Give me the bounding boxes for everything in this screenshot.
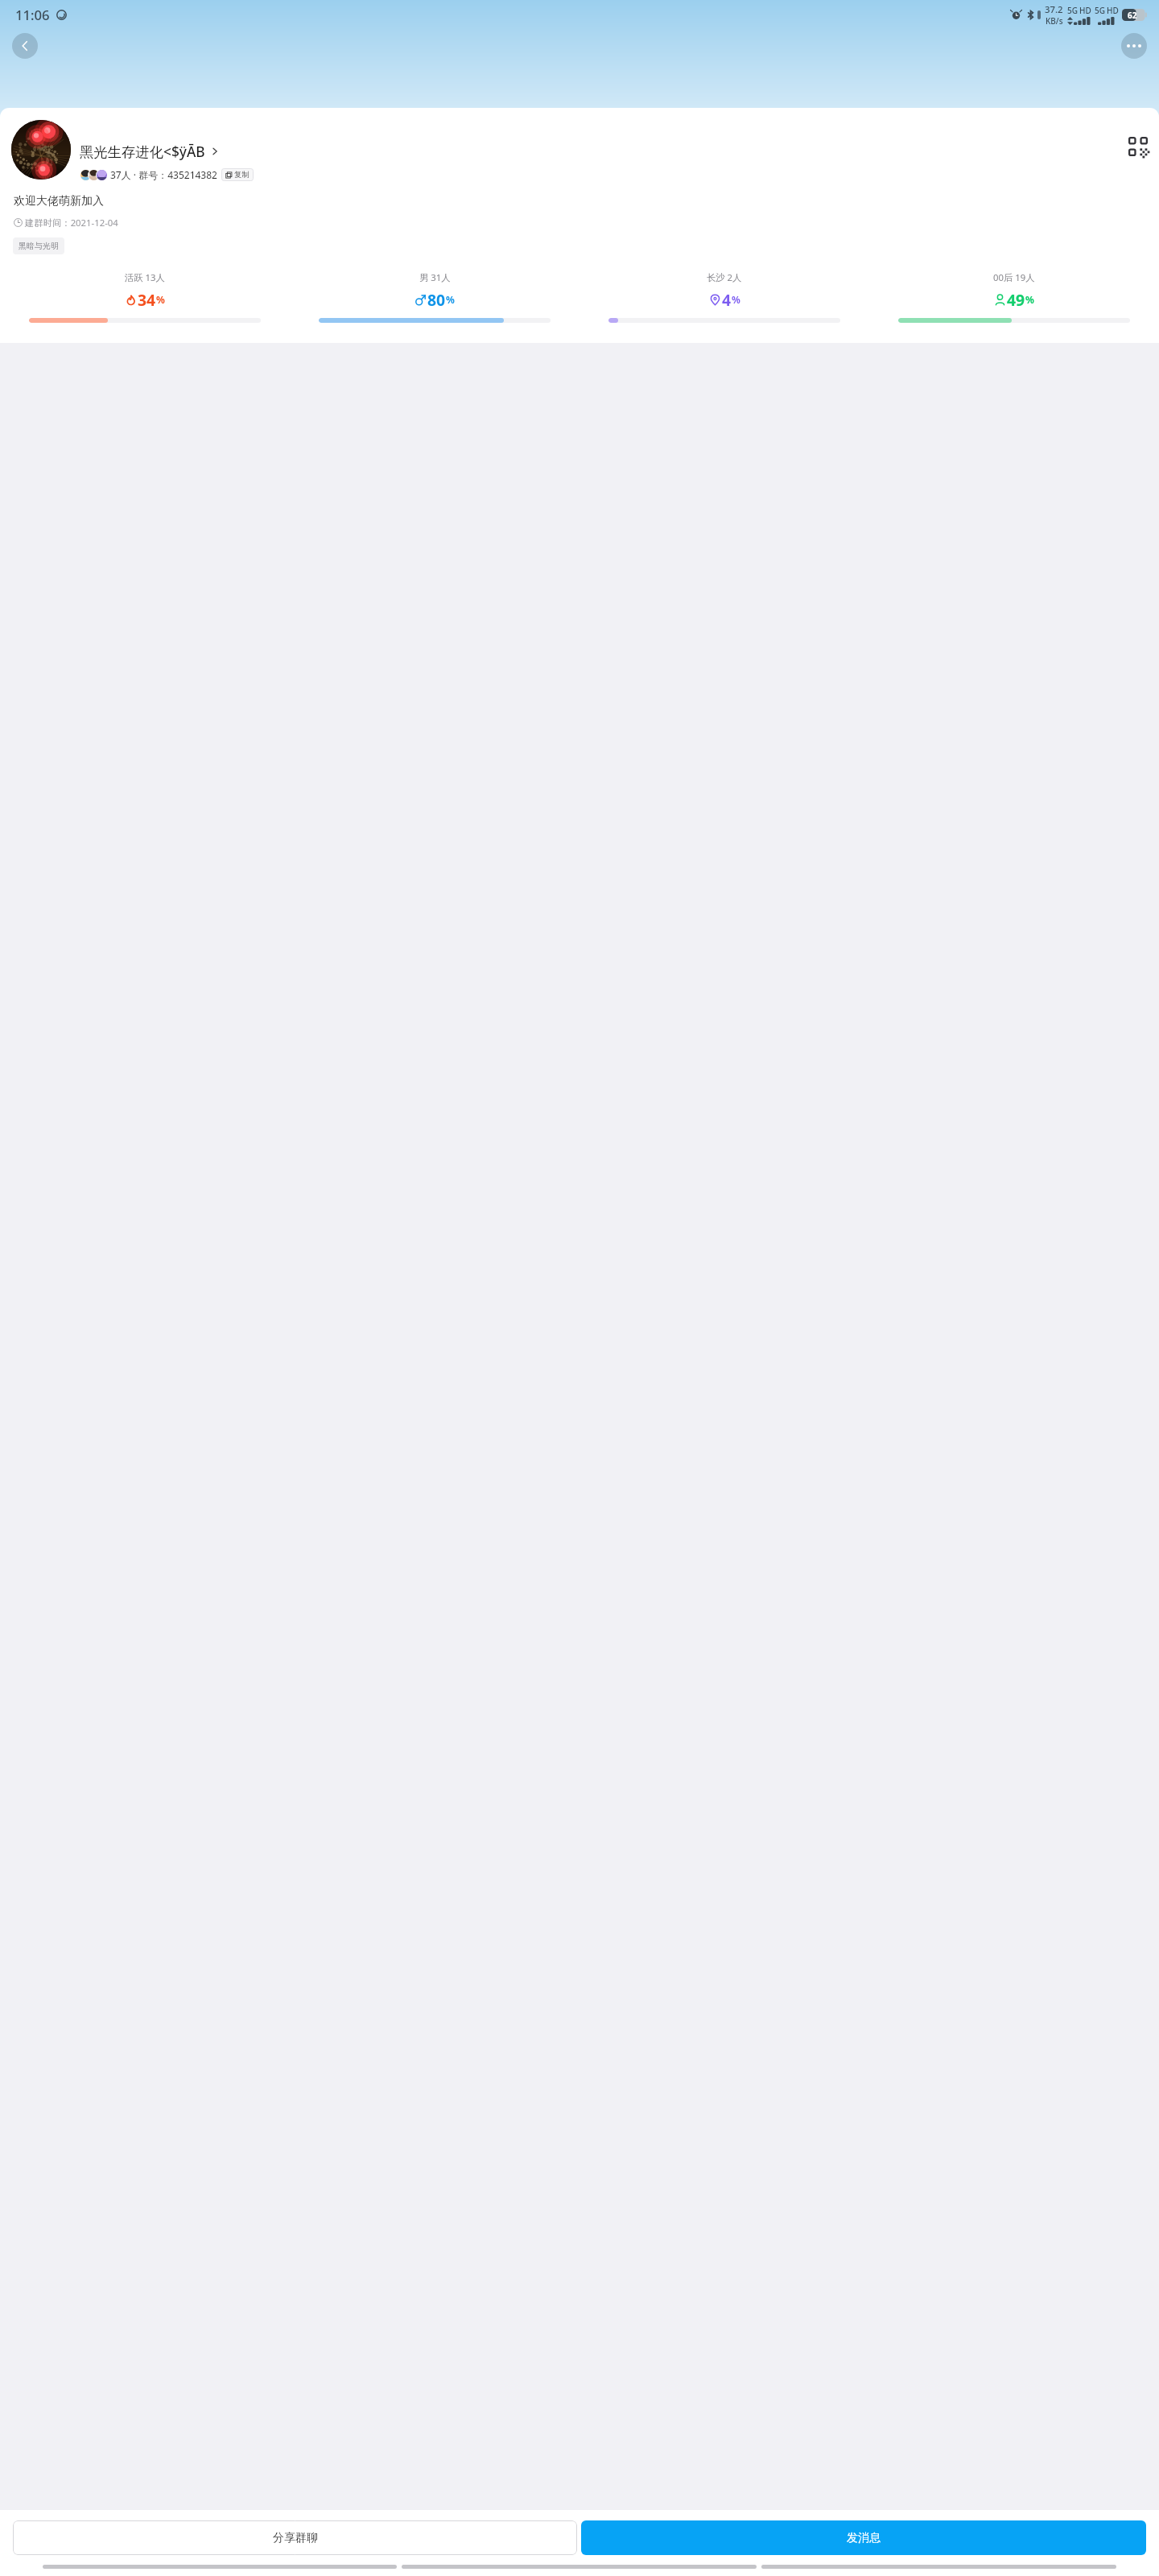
staticText: 11:06 bbox=[15, 6, 50, 24]
button[interactable]: 黑光生存进化<$ÿĀB bbox=[80, 142, 219, 161]
staticText: % bbox=[1025, 293, 1034, 306]
staticText: 黑光生存进化<$ÿĀB bbox=[80, 142, 205, 161]
button[interactable]: 长沙 2人 bbox=[579, 271, 869, 323]
button[interactable]: Back bbox=[12, 33, 38, 59]
staticText: 5G bbox=[1067, 5, 1078, 16]
button[interactable]: 活跃 13人 bbox=[0, 271, 290, 323]
button[interactable] bbox=[11, 120, 71, 180]
staticText: 活跃 13人 bbox=[125, 271, 165, 283]
staticText: KB/s bbox=[1046, 15, 1063, 27]
staticText: 37.2 bbox=[1045, 3, 1063, 15]
button[interactable]: 复制 bbox=[221, 168, 254, 181]
staticText: 分享群聊 bbox=[273, 2531, 318, 2545]
staticText: 长沙 2人 bbox=[707, 271, 742, 283]
button[interactable]: 黑暗与光明 bbox=[13, 237, 64, 254]
button[interactable]: More options bbox=[1121, 33, 1147, 59]
button[interactable]: 00后 19人 bbox=[869, 271, 1159, 323]
staticText: 34 bbox=[138, 289, 156, 310]
staticText: % bbox=[732, 293, 740, 306]
button[interactable]: Group QR code bbox=[1128, 137, 1148, 156]
staticText: 80 bbox=[427, 289, 446, 310]
button[interactable]: 分享群聊 bbox=[13, 2520, 577, 2555]
staticText: HD bbox=[1079, 5, 1091, 16]
staticText: % bbox=[446, 293, 455, 306]
staticText: 建群时间：2021-12-04 bbox=[25, 217, 118, 229]
staticText: 黑暗与光明 bbox=[19, 241, 59, 251]
button[interactable]: 发消息 bbox=[581, 2520, 1146, 2555]
staticText: 5G bbox=[1095, 5, 1105, 16]
staticText: 62 bbox=[1128, 10, 1137, 21]
staticText: 欢迎大佬萌新加入 bbox=[14, 194, 104, 208]
staticText: 00后 19人 bbox=[993, 271, 1035, 283]
button[interactable]: 男 31人 bbox=[290, 271, 579, 323]
staticText: 复制 bbox=[234, 170, 250, 180]
staticText: HD bbox=[1107, 5, 1119, 16]
staticText: % bbox=[156, 293, 165, 306]
staticText: 49 bbox=[1007, 289, 1025, 310]
staticText: 37人 · 群号：435214382 bbox=[110, 168, 217, 181]
staticText: 4 bbox=[722, 289, 732, 310]
staticText: 发消息 bbox=[847, 2531, 881, 2545]
staticText: 男 31人 bbox=[419, 271, 451, 283]
